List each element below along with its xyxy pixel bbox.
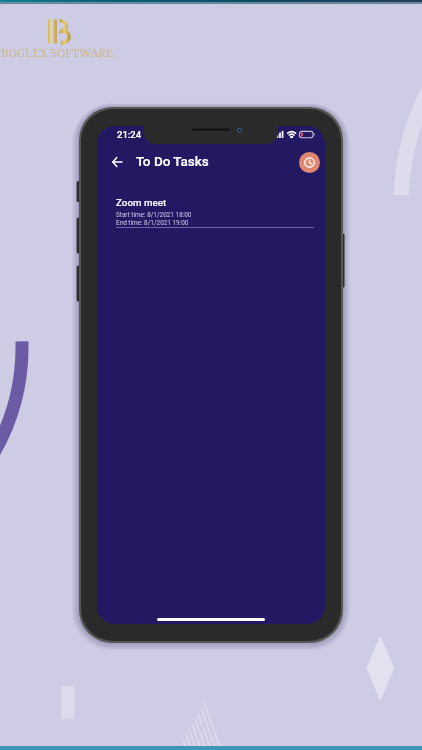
staticText: Start time: 8/1/2021 18:00 [116,211,192,219]
button[interactable]: History [299,152,320,173]
button[interactable]: Zoom meet [97,197,325,228]
staticText: 21:24 [117,129,142,140]
staticText: End time: 8/1/2021 19:00 [116,219,189,227]
button[interactable]: Back [106,151,128,173]
staticText: Zoom meet [116,197,167,208]
staticText: To Do Tasks [136,153,209,169]
staticText: BOGLEX SOFTWARE [1,45,114,61]
